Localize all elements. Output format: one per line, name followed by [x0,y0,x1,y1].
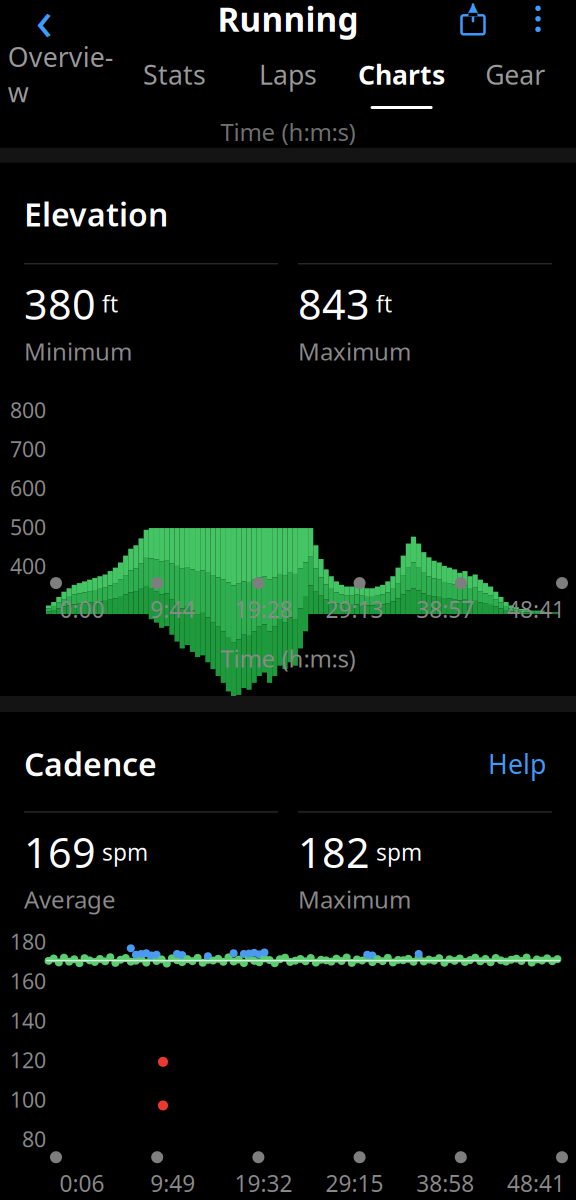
staticText: 180 [10,927,46,956]
staticText: Time (h:m:s) [220,642,355,674]
staticText: 843 [298,276,370,331]
staticText: 500 [10,513,46,541]
staticText: Laps [259,57,317,92]
staticText: spm [370,837,422,867]
staticText: 380 [24,276,96,331]
staticText: ft [370,289,392,319]
staticText: Charts [358,57,445,92]
staticText: 140 [10,1006,46,1035]
staticText: 48:41 [507,1168,565,1198]
staticText: 80 [22,1125,46,1153]
staticText: 38:57 [416,594,474,624]
staticText: Average [24,883,116,915]
staticText: 19:28 [235,594,293,624]
staticText: Elevation [24,193,168,235]
staticText: Maximum [298,883,411,915]
staticText: Cadence [24,742,157,785]
staticText: 9:44 [150,594,195,624]
button[interactable]: Stats [118,50,231,116]
staticText: 400 [10,552,46,580]
staticText: 0:00 [59,594,104,624]
button[interactable]: Gear [458,50,572,116]
staticText: 19:32 [235,1168,293,1198]
button[interactable]: Laps [231,50,345,116]
staticText: 169 [24,824,96,879]
staticText: 100 [10,1085,46,1114]
staticText: Time (h:m:s) [220,116,355,148]
staticText: Running [217,0,358,41]
staticText: 48:41 [507,594,565,624]
staticText: spm [96,837,148,867]
staticText: Overview [8,39,114,110]
staticText: ▲ [467,0,478,16]
staticText: Maximum [298,335,411,367]
button[interactable]: Help [482,742,552,785]
staticText: 29:13 [325,594,383,624]
staticText: 9:49 [150,1168,195,1198]
staticText: Stats [143,57,206,92]
button[interactable]: More options [516,0,560,44]
staticText: 38:58 [416,1168,474,1198]
staticText: Minimum [24,335,132,367]
button[interactable]: Back [16,0,72,47]
staticText: 160 [10,967,46,995]
staticText: 182 [298,824,370,879]
staticText: 120 [10,1046,46,1074]
staticText: 800 [10,396,46,424]
staticText: 29:15 [325,1168,383,1198]
staticText: ‹ [35,0,52,56]
button[interactable]: Charts [345,50,458,116]
staticText: 600 [10,474,46,502]
staticText: 0:06 [59,1168,104,1198]
staticText: Help [488,746,546,781]
button[interactable]: Overview [4,50,118,116]
staticText: Gear [485,57,545,92]
button[interactable]: Share [448,0,498,44]
staticText: 700 [10,435,46,463]
staticText: ft [96,289,118,319]
